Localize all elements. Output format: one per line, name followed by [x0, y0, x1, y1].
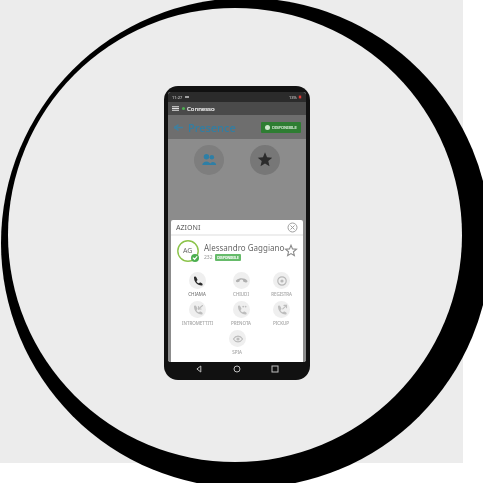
staticText: AZIONI [176, 223, 201, 233]
button[interactable]: DISPONIBILE [261, 122, 301, 133]
staticText: Connesso [187, 105, 215, 113]
button[interactable]: Home [230, 362, 244, 376]
button[interactable]: Contacts [194, 145, 224, 175]
button[interactable]: PRENOTA [219, 299, 263, 328]
staticText: 11:27 [172, 95, 183, 100]
staticText: DISPONIBILE [217, 255, 239, 260]
button[interactable]: AG [171, 236, 303, 266]
button[interactable]: SPIA [215, 328, 259, 357]
other: Menu [172, 105, 179, 112]
staticText: REGISTRA [271, 291, 292, 297]
button[interactable]: Recents [268, 362, 282, 376]
staticText: 232 [204, 254, 213, 261]
staticText: CHIAMA [188, 291, 206, 297]
staticText: DISPONIBILE [272, 125, 297, 130]
button[interactable]: REGISTRA [263, 270, 299, 299]
button[interactable]: CHIAMA [175, 270, 219, 299]
staticText: PRENOTA [231, 320, 251, 326]
button[interactable]: Favourite [285, 245, 297, 257]
button[interactable]: Back [192, 362, 206, 376]
staticText: SPIA [232, 349, 242, 355]
button[interactable]: INTROMETTITI [175, 299, 219, 328]
button[interactable]: CHIUDI [219, 270, 263, 299]
button[interactable]: Favourites [250, 145, 280, 175]
staticText: INTROMETTITI [182, 320, 213, 326]
button[interactable]: Back [173, 122, 184, 133]
staticText: Presence [188, 120, 236, 135]
staticText: PICKUP [273, 320, 289, 326]
staticText: AG [183, 246, 193, 256]
button[interactable]: PICKUP [263, 299, 299, 328]
staticText: 13% [289, 95, 297, 100]
button[interactable]: Close [287, 222, 298, 233]
staticText: Alessandro Gaggiano [204, 242, 285, 253]
staticText: CHIUDI [233, 291, 249, 297]
